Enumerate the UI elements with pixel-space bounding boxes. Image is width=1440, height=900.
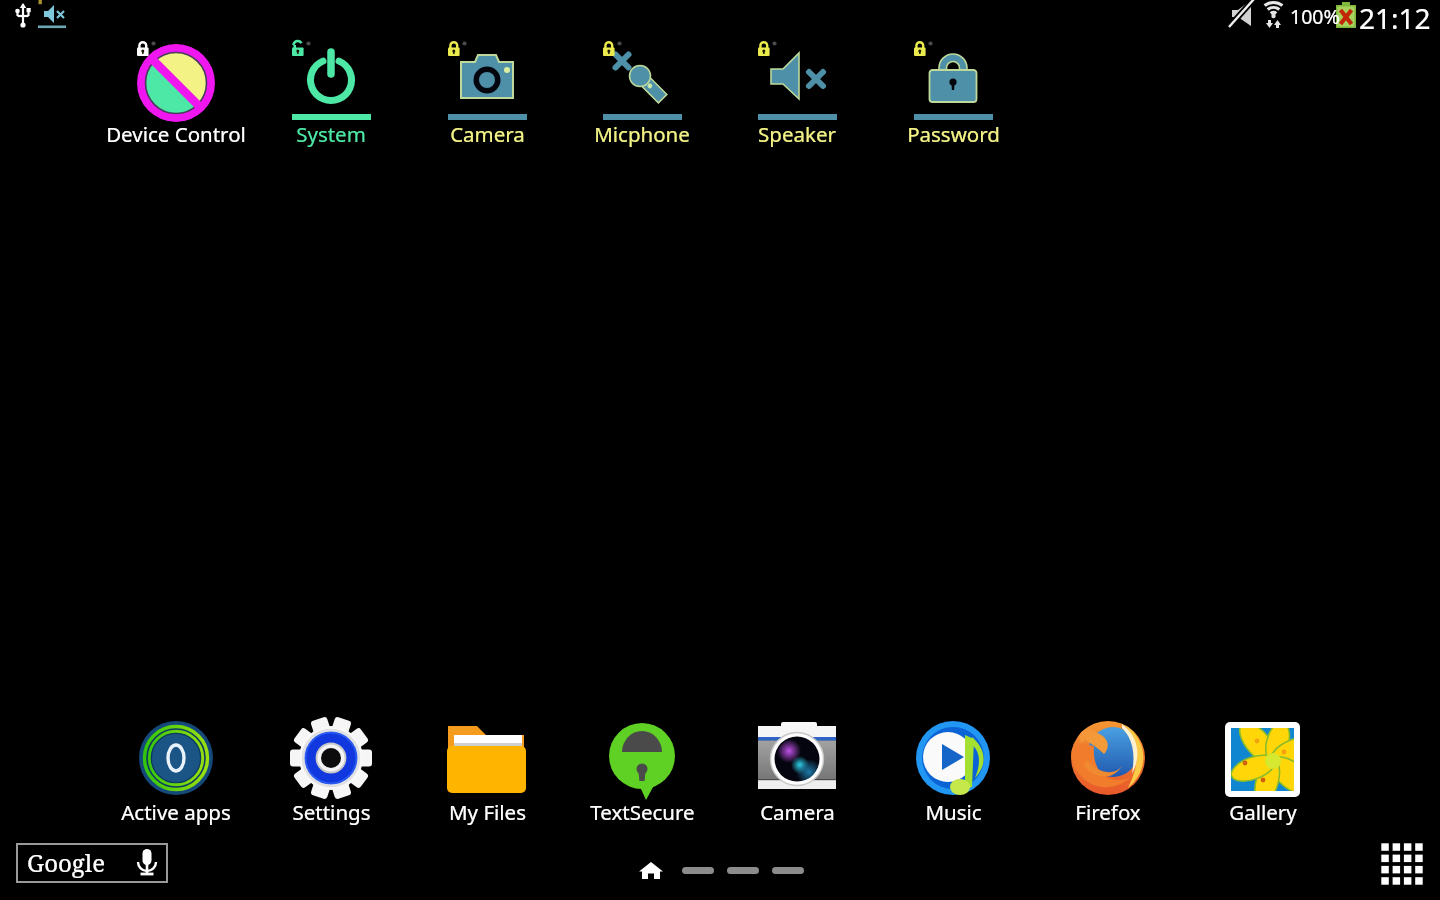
staticText: Micphone <box>594 120 690 148</box>
button[interactable]: Home screen page 2 <box>727 856 759 884</box>
button[interactable]: Music <box>878 716 1028 834</box>
button[interactable]: Speaker <box>722 37 872 152</box>
staticText: 21:12 <box>1359 0 1431 37</box>
staticText: Gallery <box>1229 798 1297 826</box>
button[interactable]: Settings <box>256 716 406 834</box>
button[interactable]: Firefox <box>1033 716 1183 834</box>
button[interactable]: TextSecure <box>567 716 717 834</box>
button[interactable]: Google <box>16 843 168 883</box>
button[interactable]: My Files <box>412 716 562 834</box>
staticText: Speaker <box>758 120 836 148</box>
staticText: Password <box>907 120 1000 148</box>
staticText: Camera <box>760 798 835 826</box>
staticText: System <box>296 120 366 148</box>
staticText: TextSecure <box>590 798 695 826</box>
button[interactable]: Home screen page 3 <box>772 856 804 884</box>
button[interactable]: Active apps <box>101 716 251 834</box>
staticText: Active apps <box>121 798 231 826</box>
button[interactable]: Password <box>878 37 1028 152</box>
button[interactable]: All apps <box>1376 838 1428 890</box>
button[interactable]: System <box>256 37 406 152</box>
staticText: 100% <box>1290 3 1340 30</box>
button[interactable]: Device Control <box>101 37 251 152</box>
staticText: Camera <box>450 120 525 148</box>
staticText: Settings <box>292 798 371 826</box>
staticText: Firefox <box>1075 798 1141 826</box>
button[interactable]: Gallery <box>1188 716 1338 834</box>
staticText: Music <box>925 798 982 826</box>
button[interactable]: Camera <box>412 37 562 152</box>
staticText: Google <box>27 846 106 879</box>
button[interactable]: Home screen <box>632 854 672 888</box>
button[interactable]: Camera <box>722 716 872 834</box>
button[interactable]: Micphone <box>567 37 717 152</box>
staticText: Device Control <box>106 120 246 148</box>
button[interactable]: Home screen page 1 <box>682 856 714 884</box>
staticText: My Files <box>449 798 526 826</box>
